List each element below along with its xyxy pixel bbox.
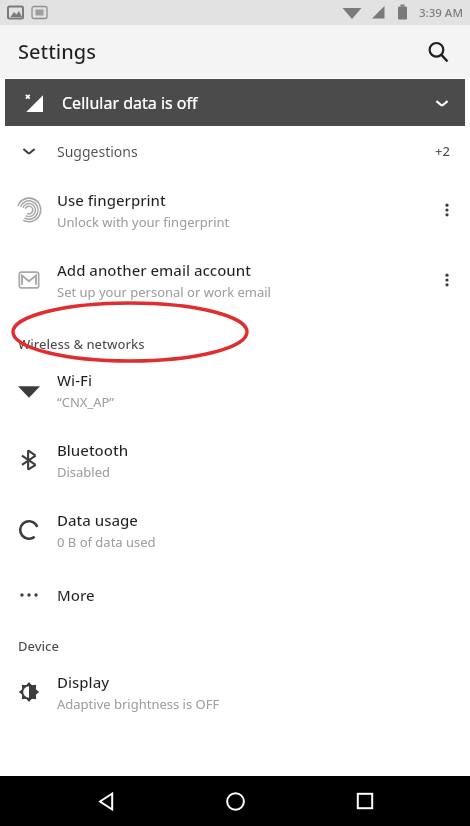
staticText: Set up your personal or work email xyxy=(57,283,271,301)
staticText: Add another email account xyxy=(57,260,251,280)
button[interactable]: More options xyxy=(424,257,470,303)
button[interactable]: Display xyxy=(0,657,470,727)
staticText: Data usage xyxy=(57,510,138,530)
button[interactable]: More xyxy=(0,565,470,625)
staticText: +2 xyxy=(435,142,450,160)
staticText: Wi-Fi xyxy=(57,370,92,390)
staticText: Cellular data is off xyxy=(62,92,419,114)
staticText: Disabled xyxy=(57,463,111,481)
button[interactable]: Home xyxy=(211,777,259,825)
button[interactable]: Recents xyxy=(341,777,389,825)
button[interactable]: Search xyxy=(416,30,460,74)
button[interactable]: Data usage xyxy=(0,495,470,565)
button[interactable]: Cellular data is off xyxy=(5,79,465,126)
staticText: Bluetooth xyxy=(57,440,129,460)
button[interactable]: Bluetooth xyxy=(0,425,470,495)
staticText: 3:39 AM xyxy=(419,5,463,21)
staticText: Suggestions xyxy=(57,142,435,161)
staticText: 0 B of data used xyxy=(57,533,156,551)
button[interactable]: Wi-Fi xyxy=(0,355,470,425)
staticText: Wireless & networks xyxy=(18,335,145,353)
staticText: Settings xyxy=(18,38,96,65)
staticText: Device xyxy=(18,637,59,655)
button[interactable]: More options xyxy=(424,187,470,233)
button[interactable]: Suggestions xyxy=(0,127,470,175)
staticText: “CNX_AP” xyxy=(57,393,114,411)
staticText: Display xyxy=(57,672,110,692)
staticText: Adaptive brightness is OFF xyxy=(57,695,220,713)
staticText: Use fingerprint xyxy=(57,190,166,210)
button[interactable]: Back xyxy=(82,777,130,825)
staticText: Unlock with your fingerprint xyxy=(57,213,230,231)
button[interactable]: Use fingerprint xyxy=(0,175,470,245)
button[interactable]: Add another email account xyxy=(0,245,470,315)
staticText: More xyxy=(57,585,95,605)
